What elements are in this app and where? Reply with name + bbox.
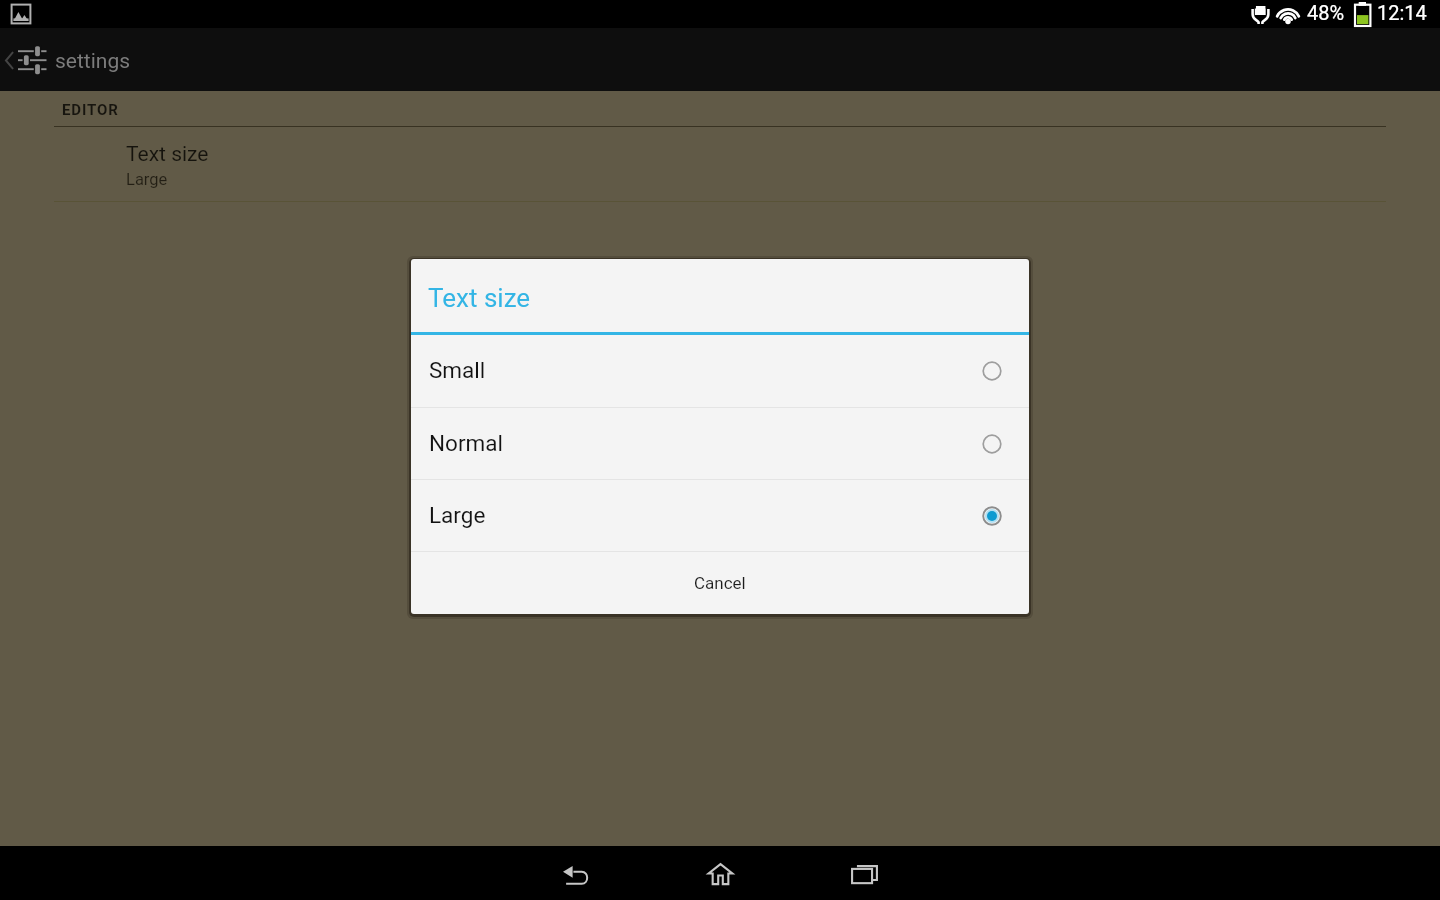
button[interactable]: Small <box>411 335 1029 407</box>
button[interactable]: Back <box>536 848 616 900</box>
staticText: Cancel <box>694 573 746 593</box>
button[interactable]: Navigate up <box>0 28 145 91</box>
staticText: Large <box>429 502 486 528</box>
staticText: EDITOR <box>62 101 119 119</box>
staticText: 48% <box>1307 1 1345 24</box>
button[interactable]: Cancel <box>411 552 1029 614</box>
staticText: Large <box>126 170 168 189</box>
button[interactable]: Home <box>680 847 760 900</box>
button[interactable]: Recent apps <box>824 846 904 900</box>
staticText: Small <box>429 357 486 383</box>
staticText: settings <box>55 49 131 74</box>
button[interactable]: Large <box>411 480 1029 552</box>
other: Navigate up <box>5 52 13 69</box>
other: Screenshot captured <box>11 4 31 24</box>
button[interactable]: Text size <box>0 126 1440 201</box>
staticText: Text size <box>126 142 209 167</box>
staticText: 12:14 <box>1377 1 1427 24</box>
button[interactable]: Normal <box>411 408 1029 480</box>
staticText: Normal <box>429 430 503 456</box>
staticText: Text size <box>428 283 531 313</box>
